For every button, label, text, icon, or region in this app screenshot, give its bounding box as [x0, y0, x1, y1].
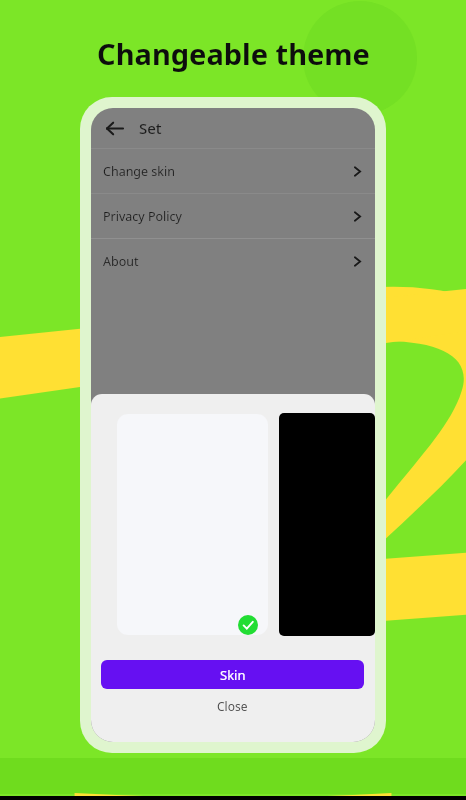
button[interactable]: Change skin [91, 149, 375, 193]
button[interactable]: Close [101, 694, 364, 718]
button[interactable]: About [91, 239, 375, 283]
staticText: Close [217, 698, 248, 714]
button[interactable]: Privacy Policy [91, 194, 375, 238]
staticText: Set [139, 118, 162, 138]
staticText: Changeable theme [97, 34, 370, 73]
staticText: About [103, 253, 139, 270]
staticText: Skin [220, 666, 246, 684]
button[interactable]: Back [97, 111, 131, 145]
button[interactable]: Dark skin [279, 413, 375, 636]
button[interactable]: Skin [101, 660, 364, 689]
staticText: Change skin [103, 163, 175, 180]
button[interactable]: Light skin [117, 414, 268, 635]
staticText: Privacy Policy [103, 208, 182, 225]
